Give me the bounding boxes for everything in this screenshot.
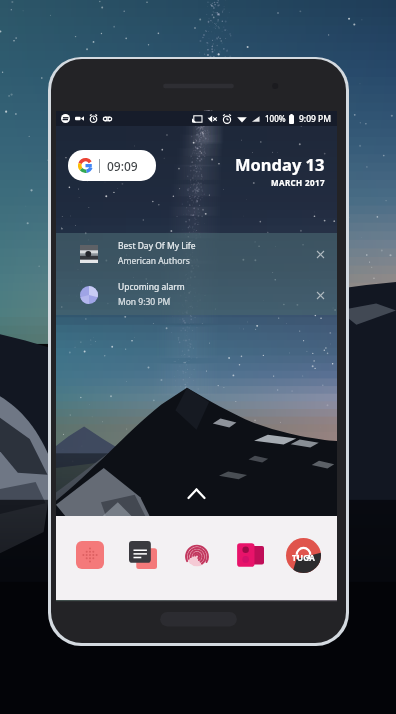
staticText: TUGA — [292, 552, 316, 563]
button[interactable]: Dismiss notification — [312, 287, 328, 303]
button[interactable]: Upcoming alarm — [56, 274, 337, 315]
staticText: Monday 13 — [235, 153, 325, 175]
button[interactable]: Tuga — [285, 537, 321, 573]
staticText: Best Day Of My Life — [118, 240, 196, 252]
button[interactable]: Messages — [125, 537, 161, 573]
staticText: American Authors — [118, 255, 190, 267]
button[interactable]: Best Day Of My Life — [56, 233, 337, 274]
staticText: 9:09 PM — [299, 113, 332, 125]
staticText: 100% — [265, 113, 286, 124]
button[interactable]: Open app drawer — [56, 481, 337, 505]
button[interactable]: 09:09 — [68, 150, 156, 181]
button[interactable]: Phone dialer — [72, 537, 108, 573]
button[interactable]: Dismiss notification — [312, 246, 328, 262]
staticText: Upcoming alarm — [118, 281, 185, 293]
staticText: Mon 9:30 PM — [118, 296, 171, 308]
staticText: MARCH 2017 — [271, 177, 325, 188]
staticText: 09:09 — [107, 158, 138, 174]
button[interactable]: Fingerprint — [179, 537, 215, 573]
button[interactable]: Camera — [232, 537, 268, 573]
